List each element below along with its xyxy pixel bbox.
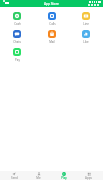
staticText: Me bbox=[36, 176, 41, 180]
staticText: Line bbox=[83, 22, 89, 26]
button[interactable]: Calls bbox=[43, 12, 60, 26]
staticText: Pay bbox=[15, 58, 20, 62]
button[interactable]: Send bbox=[2, 171, 26, 180]
button[interactable]: Line bbox=[77, 12, 94, 26]
staticText: Like bbox=[83, 40, 89, 44]
button[interactable]: Like bbox=[77, 30, 94, 44]
staticText: Send bbox=[11, 176, 18, 180]
button[interactable]: Search bbox=[88, 4, 99, 6]
button[interactable]: Apps bbox=[76, 171, 101, 180]
button[interactable]: Me bbox=[26, 171, 51, 180]
button[interactable]: Menu bbox=[5, 2, 9, 4]
staticText: Play bbox=[61, 176, 67, 180]
button[interactable]: Cash bbox=[8, 12, 25, 26]
button[interactable]: Mail bbox=[43, 30, 60, 44]
staticText: Chats bbox=[13, 40, 21, 44]
staticText: App Store bbox=[44, 2, 59, 6]
staticText: Mail bbox=[49, 40, 55, 44]
staticText: Calls bbox=[49, 22, 56, 26]
staticText: Apps bbox=[85, 176, 92, 180]
button[interactable]: Play bbox=[51, 171, 76, 180]
button[interactable]: Pay bbox=[8, 48, 25, 62]
button[interactable]: Chats bbox=[8, 30, 25, 44]
staticText: Cash bbox=[14, 22, 21, 26]
